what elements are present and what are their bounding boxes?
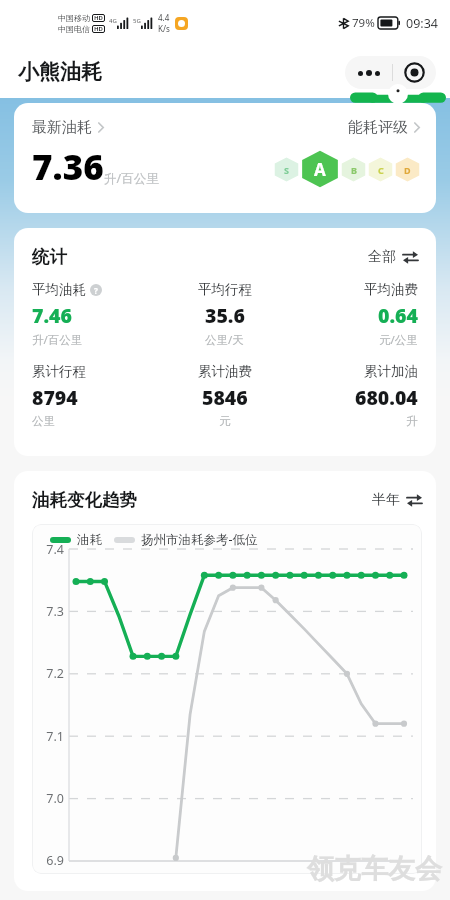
button[interactable]: 能耗评级 [348,118,420,137]
button[interactable]: 最新油耗 [32,118,104,137]
staticText: 中国电信 [58,24,90,34]
staticText: 7.3 [32,603,64,620]
staticText: 5G [133,17,141,25]
staticText: HD [94,25,103,33]
button[interactable]: 平均油费 [289,281,418,348]
staticText: 680.04 [355,384,418,411]
staticText: 油耗 [77,532,102,548]
staticText: 7.36 [32,143,104,191]
staticText: 小熊油耗 [18,59,102,85]
staticText: 升/百公里 [104,170,159,187]
staticText: 6.9 [32,852,64,869]
button[interactable]: Mini program menu [393,56,436,89]
button[interactable]: More options [345,56,392,89]
staticText: HD [94,14,103,22]
staticText: 扬州市油耗参考-低位 [141,531,258,548]
staticText: 7.4 [32,541,64,558]
staticText: 中国移动 [58,13,90,23]
staticText: 最新油耗 [32,118,92,137]
button[interactable]: 全部 [368,248,418,266]
button[interactable]: 累计加油 [289,363,418,428]
staticText: 平均行程 [198,281,252,298]
button[interactable]: 半年 [372,491,422,509]
staticText: 公里/天 [205,332,244,348]
staticText: D [404,164,411,176]
staticText: 领克车友会 [307,852,442,886]
staticText: 4G [109,17,117,25]
button[interactable]: 累计行程 [32,363,160,428]
staticText: 元 [219,414,231,428]
staticText: 4.4 [158,12,170,23]
staticText: 35.6 [205,302,245,329]
staticText: 7.1 [32,728,64,745]
button[interactable]: 平均油耗 [32,281,160,348]
staticText: 累计行程 [32,363,86,380]
staticText: 5846 [202,384,248,411]
staticText: 累计加油 [364,363,418,380]
staticText: 8794 [32,384,78,411]
staticText: S [284,164,289,176]
staticText: 平均油耗 [32,281,86,298]
staticText: 平均油费 [364,281,418,298]
staticText: 升 [406,414,418,428]
staticText: B [351,164,357,176]
staticText: 7.46 [32,302,72,329]
staticText: 元/公里 [379,332,418,348]
staticText: ? [94,285,98,296]
staticText: 公里 [32,414,55,428]
staticText: 升/百公里 [32,332,83,348]
staticText: 7.2 [32,665,64,682]
staticText: 79% [352,15,375,31]
staticText: 能耗评级 [348,118,408,137]
staticText: K/s [158,23,170,34]
staticText: C [378,164,384,176]
staticText: 09:34 [406,15,438,32]
button[interactable]: 平均行程 [160,281,289,348]
staticText: 全部 [368,248,396,266]
staticText: 统计 [32,246,67,268]
staticText: 7.0 [32,790,64,807]
staticText: 0.64 [378,302,418,329]
staticText: 油耗变化趋势 [32,489,137,511]
staticText: 累计油费 [198,363,252,380]
staticText: A [314,158,326,181]
staticText: 半年 [372,491,400,509]
button[interactable]: 累计油费 [160,363,289,428]
